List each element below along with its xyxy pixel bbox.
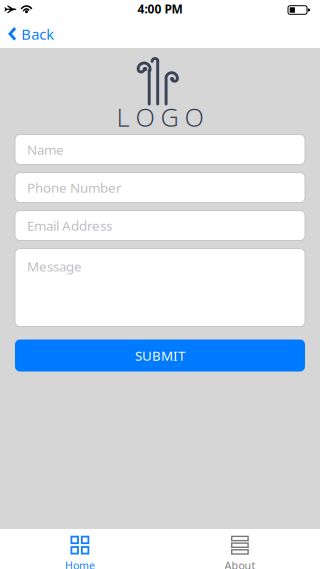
staticText: 4:00 PM bbox=[137, 1, 182, 17]
button[interactable]: Home bbox=[0, 529, 160, 569]
staticText: SUBMIT bbox=[135, 347, 185, 364]
textField[interactable]: Email Address bbox=[15, 210, 305, 240]
staticText: Email Address bbox=[27, 217, 112, 234]
staticText: About bbox=[224, 558, 255, 569]
textField[interactable]: Phone Number bbox=[15, 172, 305, 202]
staticText: Message bbox=[27, 257, 82, 275]
button[interactable]: About bbox=[160, 529, 320, 569]
textField[interactable]: Message bbox=[15, 248, 305, 326]
button[interactable]: SUBMIT bbox=[15, 339, 305, 371]
staticText: Back bbox=[21, 24, 54, 44]
staticText: Phone Number bbox=[27, 179, 122, 196]
staticText: Home bbox=[65, 558, 95, 569]
textField[interactable]: Name bbox=[15, 134, 305, 164]
staticText: LOGO bbox=[116, 100, 203, 134]
button[interactable]: Back bbox=[0, 24, 54, 44]
staticText: Name bbox=[27, 141, 64, 158]
